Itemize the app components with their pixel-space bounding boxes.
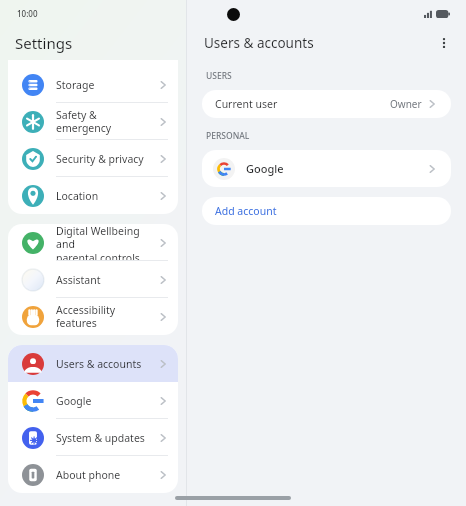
staticText: Location [56,189,99,203]
staticText: Users & accounts [204,34,314,52]
staticText: Assistant [56,273,101,287]
button[interactable]: Assistant [8,261,178,298]
button[interactable]: Accessibility features [8,298,178,335]
staticText: Storage [56,78,95,92]
button[interactable]: Add account [202,197,451,225]
staticText: parental controls [56,251,140,261]
staticText: Users & accounts [56,357,142,371]
staticText: Accessibility features [56,303,153,330]
button[interactable]: About phone [8,456,178,493]
staticText: Add account [215,204,277,218]
button[interactable]: More options [430,29,458,57]
staticText: Google [56,394,92,408]
button[interactable]: Digital Wellbeing and [8,224,178,261]
button[interactable]: Google [8,382,178,419]
staticText: PERSONAL [206,130,250,142]
staticText: 10:00 [17,8,38,19]
staticText: Safety & emergency [56,108,153,135]
staticText: Security & privacy [56,152,144,166]
staticText: Digital Wellbeing and [56,224,153,251]
staticText: Google [246,161,426,176]
button[interactable]: Safety & emergency [8,103,178,140]
button[interactable]: Location [8,177,178,214]
button[interactable]: Users & accounts [8,345,178,382]
button[interactable]: Current user [202,90,451,118]
staticText: Current user [215,97,390,111]
staticText: USERS [206,70,232,82]
staticText: Owner [390,97,422,111]
button[interactable]: Storage [8,66,178,103]
button[interactable]: Security & privacy [8,140,178,177]
button[interactable]: System & updates [8,419,178,456]
staticText: Settings [15,33,73,53]
staticText: System & updates [56,431,145,445]
staticText: About phone [56,468,121,482]
button[interactable]: Google [202,150,451,187]
